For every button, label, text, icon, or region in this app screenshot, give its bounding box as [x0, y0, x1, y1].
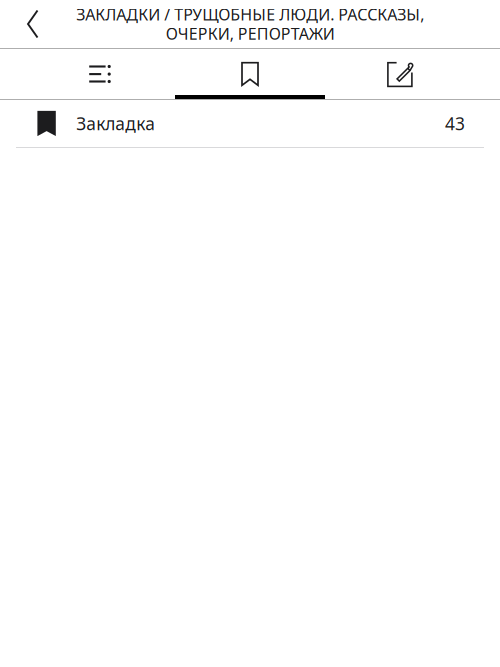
button[interactable]: Bookmarks [175, 49, 325, 99]
button[interactable]: Notes [325, 49, 475, 99]
staticText: 43 [445, 112, 465, 135]
button[interactable]: Back [0, 0, 48, 48]
staticText: ЗАКЛАДКИ / ТРУЩОБНЫЕ ЛЮДИ. РАССКАЗЫ, ОЧЕ… [76, 4, 424, 44]
button[interactable]: Contents [25, 49, 175, 99]
button[interactable]: Закладка [0, 100, 500, 148]
staticText: Закладка [76, 112, 155, 135]
